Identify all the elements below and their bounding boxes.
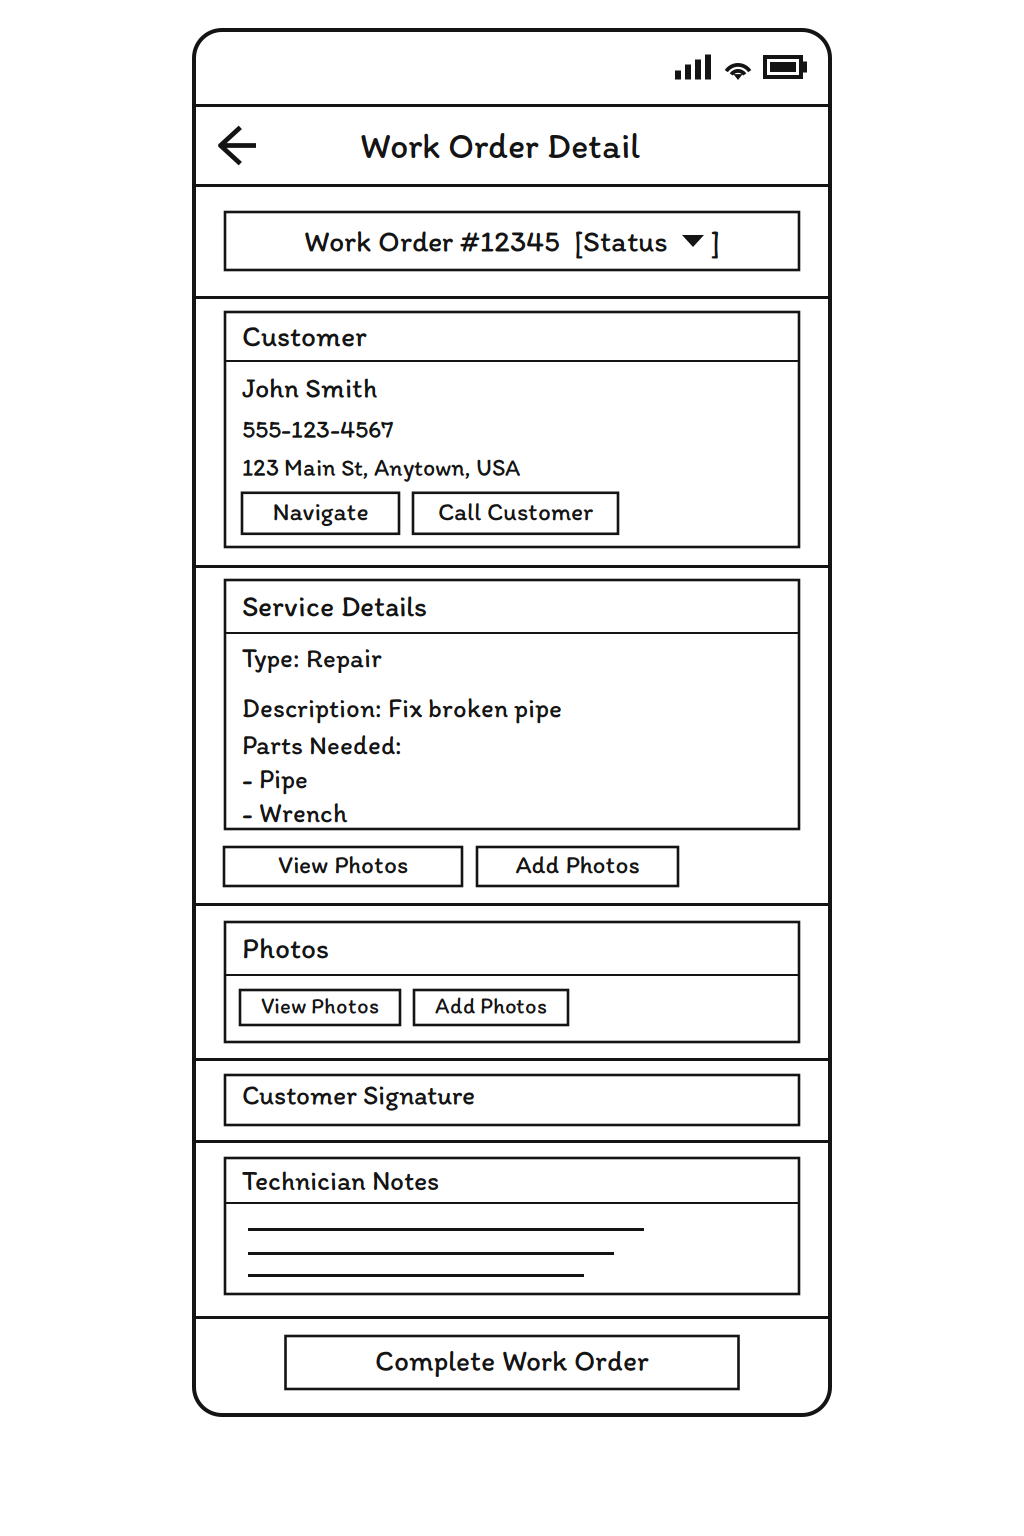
staticText: View Photos <box>261 992 379 1019</box>
staticText: Work Order #12345 [Status <box>304 223 682 259</box>
staticText: Type: Repair <box>242 642 382 674</box>
staticText: Description: Fix broken pipe <box>242 692 562 724</box>
staticText: View Photos <box>278 849 408 880</box>
button[interactable]: View Photos <box>240 990 400 1025</box>
staticText: Navigate <box>272 496 368 526</box>
staticText: Add Photos <box>515 849 639 880</box>
button[interactable]: Customer Signature <box>194 1061 830 1140</box>
button[interactable]: View Photos <box>224 847 462 886</box>
staticText: - Pipe <box>242 763 308 795</box>
button[interactable]: Work Order #12345 [Status <box>194 187 830 296</box>
button[interactable]: Technician Notes <box>194 1143 830 1316</box>
staticText: - Wrench <box>242 797 347 829</box>
staticText: Service Details <box>242 588 427 624</box>
staticText: 555-123-4567 <box>242 414 394 444</box>
button[interactable]: Back <box>201 113 273 177</box>
button[interactable]: Complete Work Order <box>285 1336 738 1389</box>
button[interactable]: Add Photos <box>414 990 568 1025</box>
staticText: Parts Needed: <box>242 729 402 761</box>
staticText: Photos <box>242 930 329 966</box>
staticText: Call Customer <box>438 496 593 526</box>
staticText: ] <box>704 223 720 259</box>
staticText: Customer <box>242 318 367 354</box>
button[interactable]: Add Photos <box>477 847 678 886</box>
staticText: 123 Main St, Anytown, USA <box>242 453 520 482</box>
staticText: John Smith <box>242 371 377 405</box>
staticText: Complete Work Order <box>375 1343 649 1378</box>
staticText: Customer Signature <box>242 1079 475 1111</box>
button[interactable]: Navigate <box>242 493 399 534</box>
button[interactable]: Call Customer <box>413 493 618 534</box>
staticText: Work Order Detail <box>360 124 640 167</box>
staticText: Technician Notes <box>242 1164 439 1197</box>
staticText: Add Photos <box>435 992 547 1019</box>
